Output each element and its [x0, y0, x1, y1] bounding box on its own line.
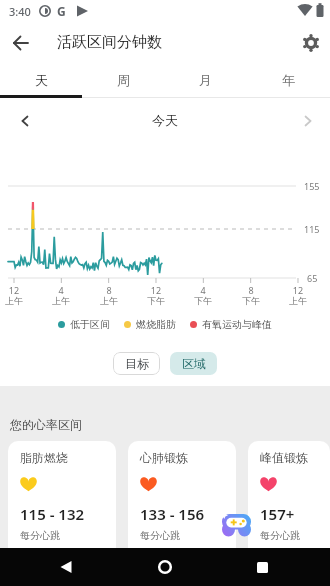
- staticText: 3:40: [9, 4, 31, 19]
- staticText: 周: [117, 72, 130, 88]
- button[interactable]: [52, 553, 80, 581]
- staticText: 低于区间: [70, 318, 110, 331]
- staticText: 4 上午: [47, 284, 75, 307]
- button[interactable]: [8, 30, 34, 56]
- staticText: 每分心跳: [260, 529, 300, 542]
- button[interactable]: 月: [164, 62, 247, 98]
- button[interactable]: [222, 514, 252, 538]
- button[interactable]: 天: [0, 62, 82, 98]
- staticText: 每分心跳: [140, 529, 180, 542]
- button[interactable]: 周: [82, 62, 164, 98]
- staticText: 您的心率区间: [10, 417, 82, 432]
- button[interactable]: [151, 553, 179, 581]
- button[interactable]: 目标: [113, 352, 160, 375]
- button[interactable]: [298, 30, 324, 56]
- staticText: 区域: [182, 356, 206, 371]
- staticText: 157+: [260, 504, 295, 524]
- button[interactable]: 峰值锻炼: [248, 441, 330, 571]
- staticText: 133 - 156: [140, 504, 205, 524]
- button[interactable]: [12, 108, 38, 134]
- staticText: 8 下午: [237, 284, 265, 307]
- staticText: 目标: [125, 356, 149, 371]
- button[interactable]: 心肺锻炼: [128, 441, 236, 571]
- button[interactable]: [295, 108, 321, 134]
- button[interactable]: 区域: [170, 352, 217, 375]
- staticText: 有氧运动与峰值: [202, 318, 272, 331]
- staticText: 年: [282, 72, 295, 88]
- staticText: 月: [199, 72, 212, 88]
- staticText: 155: [304, 180, 320, 192]
- staticText: 115: [304, 223, 320, 235]
- button[interactable]: 脂肪燃烧: [8, 441, 116, 571]
- button[interactable]: [248, 553, 276, 581]
- staticText: 活跃区间分钟数: [57, 33, 162, 52]
- button[interactable]: 年: [247, 62, 330, 98]
- staticText: 心肺锻炼: [140, 450, 188, 465]
- staticText: 脂肪燃烧: [20, 450, 68, 465]
- staticText: 4 下午: [189, 284, 217, 307]
- staticText: G: [57, 3, 66, 19]
- staticText: 8 上午: [95, 284, 123, 307]
- staticText: 12 上午: [0, 284, 28, 307]
- staticText: 115 - 132: [20, 504, 85, 524]
- staticText: 每分心跳: [20, 529, 60, 542]
- staticText: 12 上午: [284, 284, 312, 307]
- staticText: 12 下午: [142, 284, 170, 307]
- staticText: 峰值锻炼: [260, 450, 308, 465]
- staticText: 天: [35, 72, 48, 88]
- staticText: 65: [307, 272, 318, 284]
- staticText: 燃烧脂肪: [136, 318, 176, 331]
- staticText: 今天: [152, 112, 178, 128]
